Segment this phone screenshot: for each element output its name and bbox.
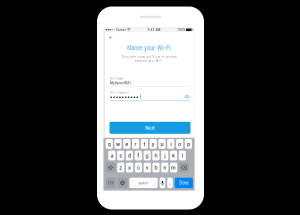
button[interactable]: x [126,163,133,172]
button[interactable]: Show password [183,94,191,100]
staticText: r [135,140,137,147]
staticText: 9:41 AM [147,28,160,32]
staticText: w [116,140,120,147]
button[interactable]: j [161,151,168,160]
staticText: e [125,140,128,147]
staticText: s [119,152,122,159]
staticText: devices to your Wi-Fi. [134,59,163,63]
button[interactable]: . [167,178,173,188]
button[interactable]: i [167,139,174,149]
button[interactable]: Next [109,122,190,134]
button[interactable]: d [126,151,133,160]
button[interactable]: Switch keyboard [117,178,127,188]
staticText: space [139,181,149,185]
button[interactable]: l [179,151,186,160]
button[interactable]: r [132,139,139,149]
staticText: f [137,152,139,159]
button[interactable]: a [108,151,115,160]
staticText: l [182,152,183,159]
staticText: d [128,152,131,159]
staticText: n [163,164,166,171]
staticText: p [187,140,190,147]
button[interactable]: c [135,163,142,172]
button[interactable]: w [114,139,122,149]
button[interactable]: o [176,139,183,149]
button[interactable]: z [117,163,124,172]
button[interactable]: Delete [179,163,189,172]
staticText: g [146,152,149,159]
button[interactable]: n [161,163,168,172]
button[interactable]: Numbers [106,178,116,188]
button[interactable]: Shift [106,163,116,172]
staticText: Next [145,124,155,131]
button[interactable]: m [170,163,177,172]
staticText: x [128,164,131,171]
staticText: 100% [177,28,186,32]
button[interactable]: k [170,151,177,160]
button[interactable]: p [185,139,192,149]
button[interactable]: Dictate [160,178,165,188]
button[interactable]: q [106,139,113,149]
staticText: k [172,152,175,159]
staticText: v [146,164,149,171]
staticText: This is the name you'll use to connect [121,55,176,59]
staticText: a [110,152,113,159]
button[interactable]: u [158,139,166,149]
staticText: MyHomeWiFi [110,81,131,85]
button[interactable]: h [152,151,159,160]
staticText: c [137,164,140,171]
button[interactable]: s [117,151,124,160]
staticText: Wi-Fi Name [110,77,123,81]
staticText: h [154,152,157,159]
button[interactable]: space [129,178,158,188]
button[interactable]: e [123,139,130,149]
staticText: Wi-Fi Password [110,91,129,94]
staticText: j [164,152,165,159]
staticText: u [160,140,163,147]
staticText: Carrier [115,28,127,32]
staticText: b [154,164,157,171]
staticText: i [170,140,171,147]
staticText: . [169,179,171,186]
button[interactable]: y [150,139,157,149]
staticText: 123 [108,181,114,185]
staticText: m [171,164,176,171]
staticText: z [119,164,122,171]
button[interactable]: g [143,151,151,160]
button[interactable]: f [135,151,142,160]
button[interactable]: Done [175,178,193,188]
staticText: q [108,140,111,147]
staticText: o [178,140,181,147]
button[interactable]: t [141,139,148,149]
button[interactable]: b [152,163,160,172]
button[interactable]: v [144,163,151,172]
staticText: t [143,140,145,147]
staticText: Done [179,180,188,185]
staticText: y [152,140,155,147]
button[interactable]: Back [105,33,117,43]
staticText: Name your Wi-Fi [127,44,171,52]
